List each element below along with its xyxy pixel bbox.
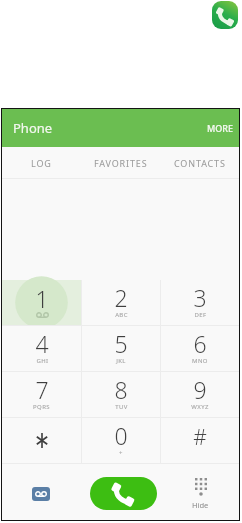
staticText: + <box>119 449 123 457</box>
button[interactable]: 9 <box>161 372 239 417</box>
staticText: MORE <box>207 122 234 134</box>
button[interactable]: # <box>161 418 239 463</box>
button[interactable]: 3 <box>161 280 239 325</box>
staticText: 5 <box>114 328 128 359</box>
button[interactable]: 6 <box>161 326 239 371</box>
button[interactable]: Phone app <box>212 1 238 29</box>
button[interactable] <box>2 418 81 463</box>
staticText: CONTACTS <box>174 157 226 169</box>
staticText: # <box>193 423 207 452</box>
staticText: MNO <box>192 357 208 365</box>
staticText: 4 <box>35 328 49 359</box>
button[interactable]: Hide <box>160 464 239 520</box>
button[interactable]: 2 <box>82 280 160 325</box>
button[interactable]: 8 <box>82 372 160 417</box>
button[interactable]: 4 <box>2 326 81 371</box>
staticText: 3 <box>193 282 207 313</box>
button[interactable]: FAVORITES <box>81 147 160 178</box>
staticText: 2 <box>114 282 128 313</box>
button[interactable]: MORE <box>197 109 239 147</box>
staticText: ABC <box>115 311 128 319</box>
staticText: 8 <box>114 374 128 405</box>
button[interactable]: Voicemail <box>2 464 82 520</box>
staticText: Phone <box>13 119 53 137</box>
button[interactable]: 0 <box>82 418 160 463</box>
staticText: 6 <box>193 328 207 359</box>
staticText: DEF <box>194 311 207 319</box>
staticText: FAVORITES <box>94 157 148 169</box>
staticText: JKL <box>116 357 126 365</box>
staticText: 0 <box>114 420 128 451</box>
button[interactable]: LOG <box>2 147 81 178</box>
staticText: LOG <box>31 157 52 169</box>
button[interactable]: Call <box>90 477 157 510</box>
staticText: TUV <box>115 403 128 411</box>
button[interactable]: 5 <box>82 326 160 371</box>
staticText: 1 <box>35 283 49 314</box>
staticText: 9 <box>193 374 207 405</box>
button[interactable]: 7 <box>2 372 81 417</box>
staticText: 7 <box>35 374 49 405</box>
button[interactable]: CONTACTS <box>160 147 239 178</box>
staticText: Hide <box>192 500 209 510</box>
staticText: GHI <box>36 357 49 365</box>
button[interactable]: 1 <box>2 280 81 325</box>
staticText: WXYZ <box>191 403 209 411</box>
staticText: PQRS <box>33 403 50 411</box>
